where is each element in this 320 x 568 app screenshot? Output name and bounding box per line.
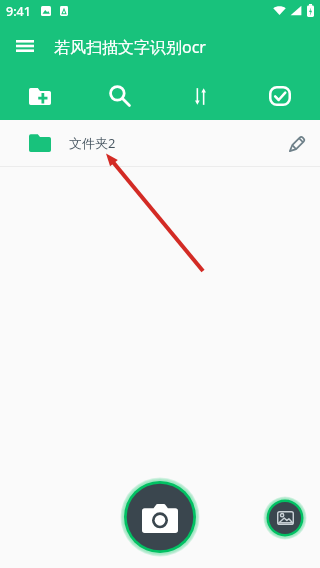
staticText: 文件夹2 <box>69 134 116 152</box>
button[interactable]: New folder <box>0 68 80 120</box>
button[interactable]: Camera <box>120 477 200 557</box>
button[interactable]: Search <box>80 68 160 120</box>
button[interactable]: Sort <box>160 68 240 120</box>
staticText: 若风扫描文字识别ocr <box>54 36 206 58</box>
staticText: 9:41 <box>6 3 31 20</box>
button[interactable]: Rename <box>275 122 317 164</box>
button[interactable]: Select all <box>240 68 320 120</box>
button[interactable]: 文件夹2 <box>0 120 320 166</box>
button[interactable]: Menu <box>7 28 43 64</box>
button[interactable]: Gallery <box>262 495 308 541</box>
